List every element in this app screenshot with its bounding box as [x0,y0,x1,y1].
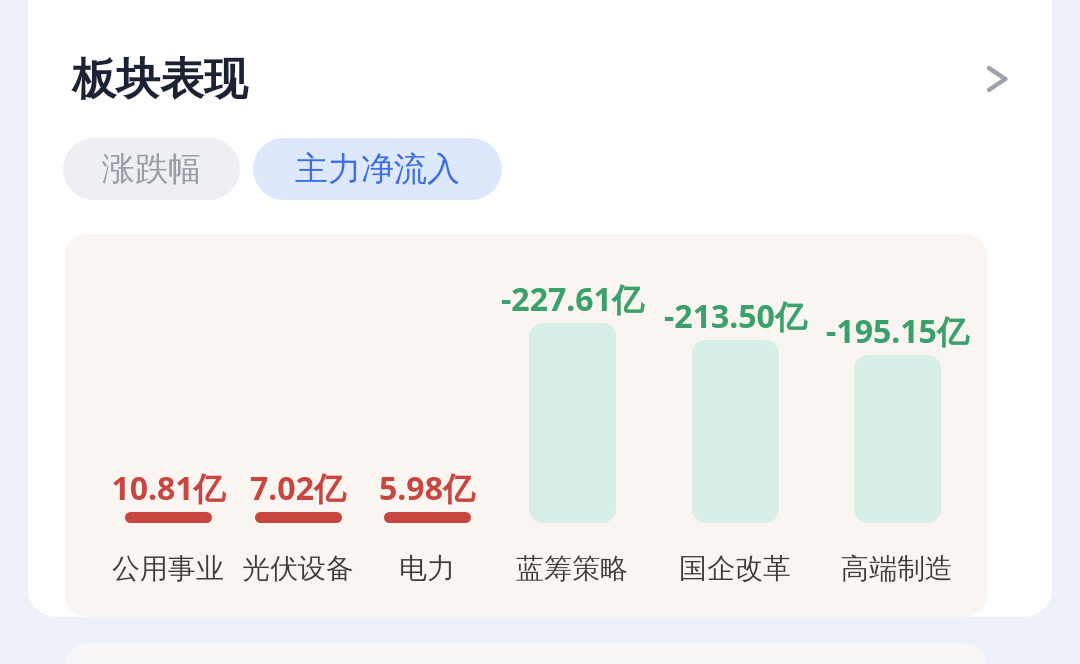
staticText: 5.98亿 [379,466,475,510]
button[interactable]: 主力净流入 [253,138,502,200]
staticText: 高端制造 [841,551,953,586]
staticText: 电力 [399,551,455,586]
staticText: -195.15亿 [826,309,969,353]
staticText: 主力净流入 [295,148,460,190]
button[interactable]: 板块表现 [28,30,1052,128]
staticText: -213.50亿 [664,294,807,338]
staticText: 涨跌幅 [102,148,201,190]
staticText: 10.81亿 [111,466,226,510]
button[interactable]: 涨跌幅 [63,138,240,200]
staticText: 国企改革 [679,551,791,586]
staticText: 板块表现 [72,52,248,107]
staticText: 7.02亿 [250,466,346,510]
button[interactable]: More [968,47,1032,111]
staticText: 光伏设备 [242,551,354,586]
staticText: -227.61亿 [501,277,644,321]
staticText: 蓝筹策略 [516,551,628,586]
staticText: 公用事业 [112,551,224,586]
button[interactable]: 10.81亿 [65,234,987,617]
